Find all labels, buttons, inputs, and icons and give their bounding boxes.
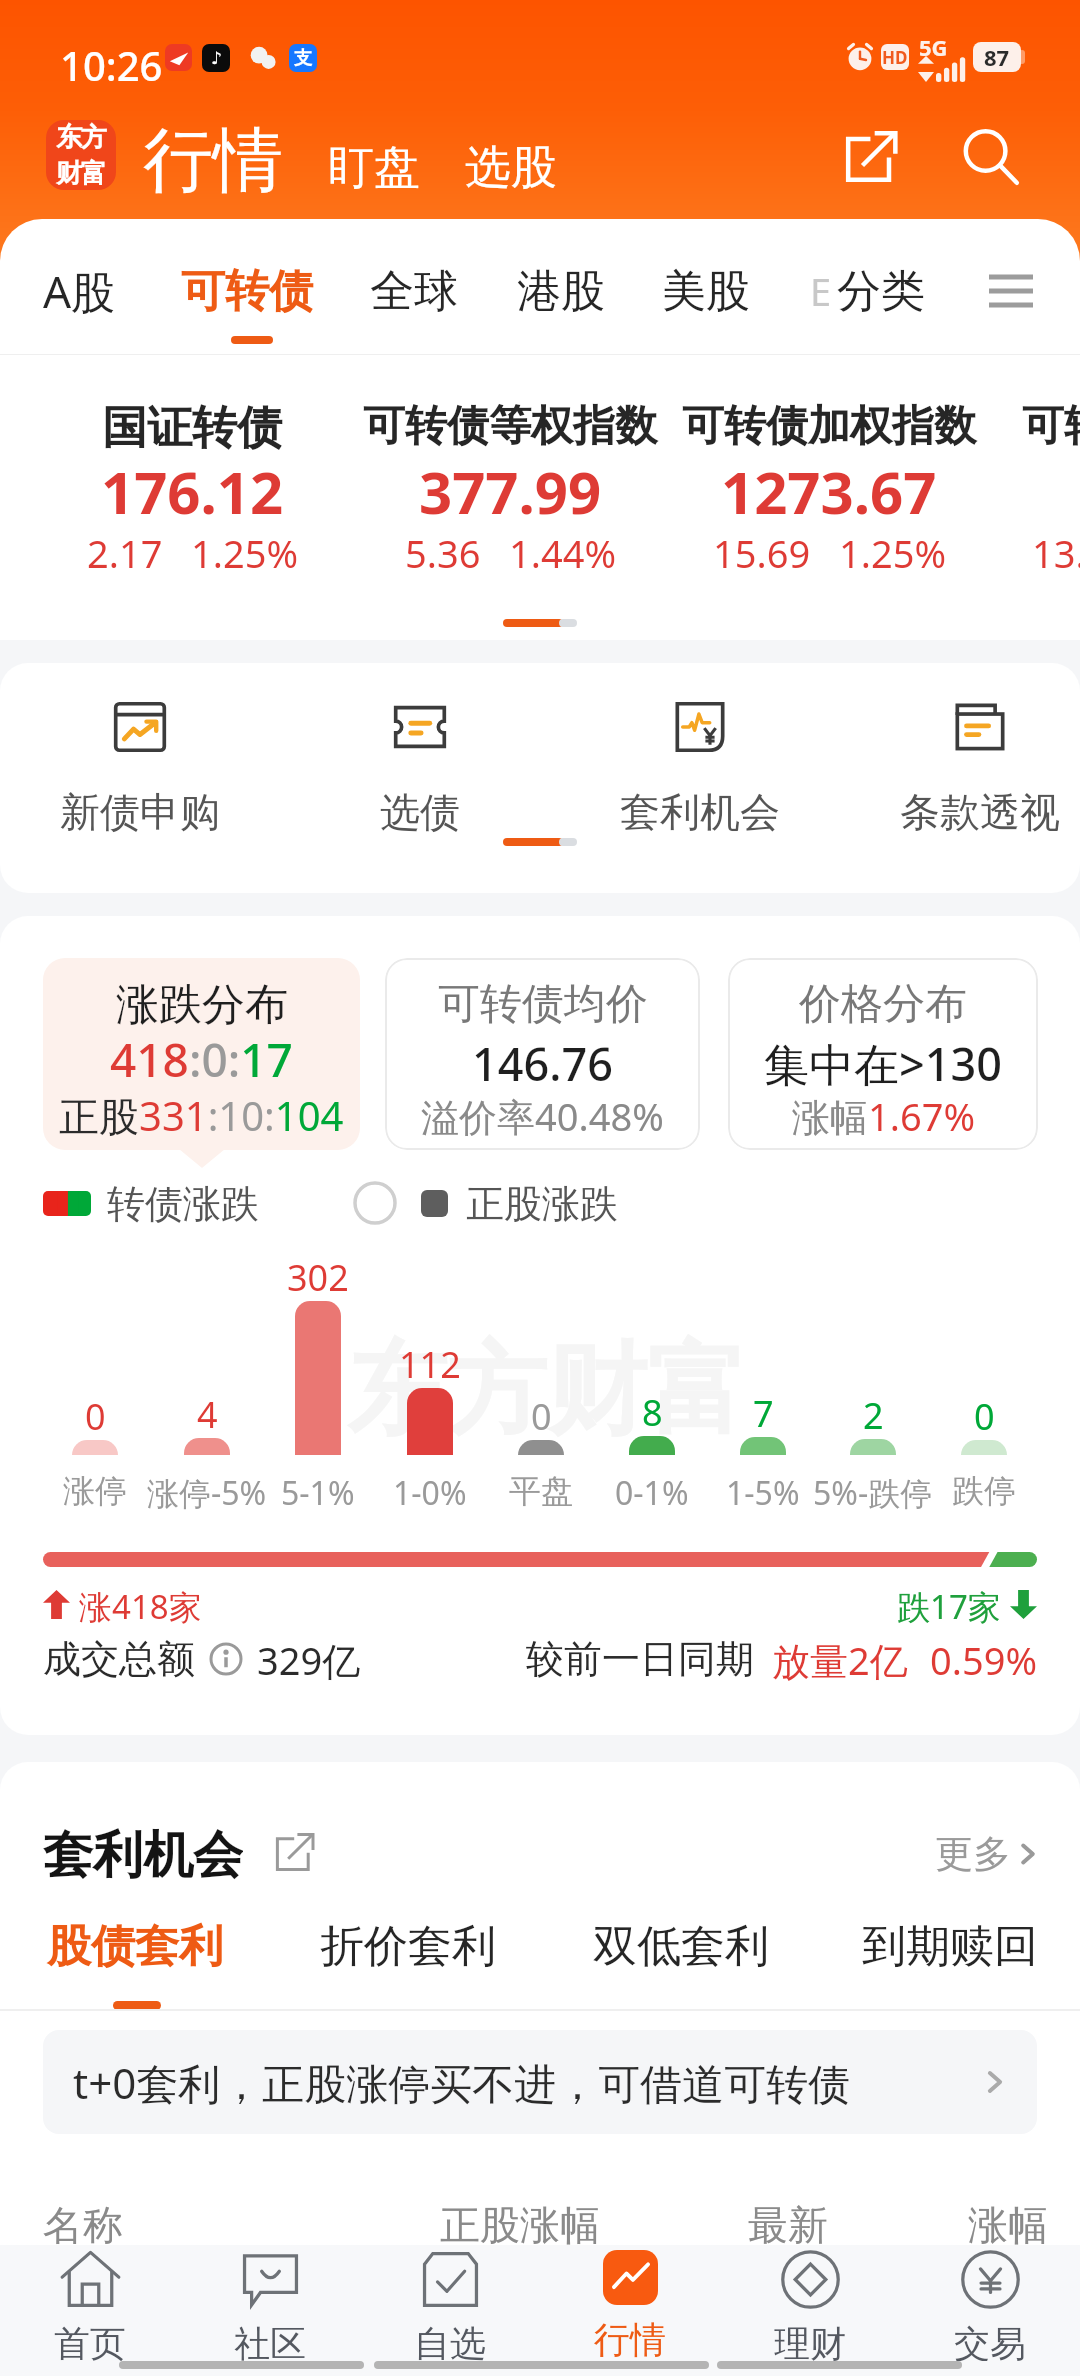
button[interactable]: 港股 (517, 227, 605, 355)
staticText: 溢价率40.48% (421, 1090, 664, 1142)
button[interactable]: 可转债加权指 (948, 355, 1080, 611)
staticText: 13.68 (1032, 527, 1080, 579)
staticText: 0.59% (930, 1634, 1037, 1684)
staticText: 正股涨跌 (466, 1180, 618, 1226)
staticText: 5.36 (405, 527, 481, 579)
staticText: 较前一日同期 (526, 1635, 754, 1683)
button[interactable]: Share (841, 126, 901, 186)
button[interactable]: 条款透视 (860, 700, 1080, 837)
staticText: 平盘 (509, 1471, 573, 1511)
staticText: 329亿 (257, 1634, 361, 1684)
staticText: ♪ (211, 48, 222, 68)
staticText: 87 (984, 42, 1010, 72)
staticText: 可转债加权指 (1022, 400, 1080, 453)
button[interactable]: 新债申购 (20, 700, 260, 837)
staticText: 股债套利 (47, 1919, 223, 1974)
staticText: 跌17家 (897, 1584, 1001, 1624)
button[interactable]: 理财 (720, 2245, 900, 2361)
staticText: 双低套利 (593, 1919, 769, 1974)
button[interactable]: E (810, 227, 925, 355)
button[interactable]: 套利机会 (43, 1824, 315, 1880)
button[interactable]: 到期赎回 (862, 1917, 1038, 1975)
staticText: 377.99 (419, 452, 602, 531)
staticText: 0 (531, 1392, 552, 1441)
staticText: 8 (642, 1388, 663, 1437)
button[interactable]: 全球 (370, 227, 458, 355)
button[interactable]: 行情 (540, 2245, 720, 2361)
staticText: 1.25% (839, 527, 946, 579)
button[interactable]: 正股涨跌 (353, 1180, 618, 1226)
staticText: 新债申购 (60, 787, 220, 837)
staticText: 0 (85, 1392, 106, 1441)
button[interactable]: 可转债 (181, 227, 313, 355)
staticText: 东方财富 (347, 1328, 747, 1454)
staticText: 涨幅1.67% (792, 1090, 975, 1142)
button[interactable]: t+0套利，正股涨停买不进，可借道可转债 (43, 2030, 1037, 2134)
button[interactable]: 转债涨跌 (43, 1180, 259, 1226)
staticText: 1.25% (191, 527, 298, 579)
staticText: 行情 (594, 2317, 666, 2361)
staticText: 2.17 (87, 527, 163, 579)
staticText: 转债涨跌 (107, 1180, 259, 1226)
staticText: 盯盘 (328, 139, 420, 197)
button[interactable]: 自选 (360, 2245, 540, 2361)
button[interactable]: Search (958, 124, 1024, 190)
button[interactable]: 更多 (935, 1830, 1043, 1878)
staticText: 1273.67 (721, 452, 937, 531)
button[interactable]: A股 (43, 227, 116, 355)
staticText: HD (882, 46, 908, 69)
staticText: 放量2亿 (772, 1634, 908, 1684)
button[interactable]: 社区 (180, 2245, 360, 2361)
staticText: 行情 (143, 117, 283, 205)
staticText: 可转债均价 (438, 978, 648, 1031)
staticText: 1-0% (393, 1471, 467, 1515)
staticText: 自选 (414, 2321, 486, 2361)
button[interactable]: 折价套利 (320, 1917, 496, 1975)
button[interactable]: 价格分布 (728, 958, 1038, 1150)
staticText: 可转债 (181, 264, 313, 319)
staticText: 5%-跌停 (813, 1471, 933, 1515)
button[interactable]: 交易 (900, 2245, 1080, 2361)
staticText: 东方 (57, 121, 106, 154)
staticText: 折价套利 (320, 1919, 496, 1974)
staticText: 国证转债 (102, 400, 282, 457)
staticText: 分类 (837, 264, 925, 319)
staticText: 4 (197, 1390, 218, 1439)
button[interactable]: 美股 (662, 227, 750, 355)
button[interactable]: 盯盘 (328, 139, 420, 197)
button[interactable]: 东方财富 (46, 120, 116, 190)
staticText: A股 (43, 261, 116, 321)
staticText: 涨跌分布 (116, 978, 288, 1032)
staticText: 集中在>130 (764, 1033, 1002, 1094)
staticText: 7 (753, 1389, 774, 1438)
button[interactable]: 选股 (465, 139, 557, 197)
button[interactable]: 国证转债 (0, 355, 392, 611)
button[interactable]: 涨跌分布 (43, 958, 360, 1150)
staticText: 价格分布 (799, 978, 967, 1031)
staticText: 套利机会 (620, 787, 780, 837)
button[interactable]: Menu (982, 227, 1040, 355)
staticText: 最新 (748, 2200, 828, 2250)
staticText: 2 (863, 1391, 884, 1440)
staticText: 涨停-5% (147, 1471, 267, 1515)
staticText: 到期赎回 (862, 1919, 1038, 1974)
staticText: 社区 (234, 2321, 306, 2361)
staticText: 涨418家 (79, 1584, 202, 1624)
button[interactable]: 可转债均价 (385, 958, 700, 1150)
button[interactable]: 可转债等权指数 (310, 355, 710, 611)
button[interactable]: 套利机会 (580, 700, 820, 837)
staticText: 15.69 (713, 527, 811, 579)
staticText: 条款透视 (900, 787, 1060, 837)
button[interactable]: 首页 (0, 2245, 180, 2361)
button[interactable]: 选债 (300, 700, 540, 837)
staticText: 正股331:10:104 (59, 1088, 344, 1143)
button[interactable]: 双低套利 (593, 1917, 769, 1975)
staticText: 176.12 (101, 452, 284, 531)
staticText: 5G (919, 32, 948, 62)
staticText: 1-5% (726, 1471, 800, 1515)
staticText: 成交总额 (43, 1635, 195, 1683)
staticText: 港股 (517, 264, 605, 319)
button[interactable]: 股债套利 (47, 1917, 223, 1975)
staticText: 0 (974, 1392, 995, 1441)
button[interactable]: 可转债加权指数 (629, 355, 1029, 611)
